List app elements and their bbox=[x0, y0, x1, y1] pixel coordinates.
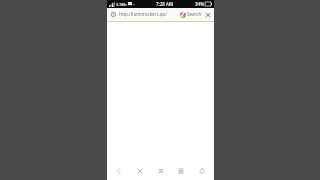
button[interactable]: Tabs bbox=[172, 162, 190, 180]
staticText: 7:28 AM bbox=[156, 1, 174, 7]
button[interactable]: Page info bbox=[110, 11, 117, 18]
button[interactable]: Stop bbox=[131, 162, 149, 180]
button[interactable]: http://iamitrockers.qo/ bbox=[119, 11, 177, 17]
button[interactable]: Google Search bbox=[179, 11, 186, 18]
button[interactable]: Home bbox=[193, 162, 211, 180]
staticText: 3.9Kb bbox=[116, 2, 127, 7]
button[interactable]: Back bbox=[110, 162, 128, 180]
staticText: 34% bbox=[195, 1, 204, 7]
button[interactable]: Search bbox=[187, 11, 202, 17]
button[interactable]: Menu bbox=[152, 162, 170, 180]
button[interactable]: Close bbox=[204, 11, 211, 18]
staticText: ·· bbox=[133, 2, 136, 7]
